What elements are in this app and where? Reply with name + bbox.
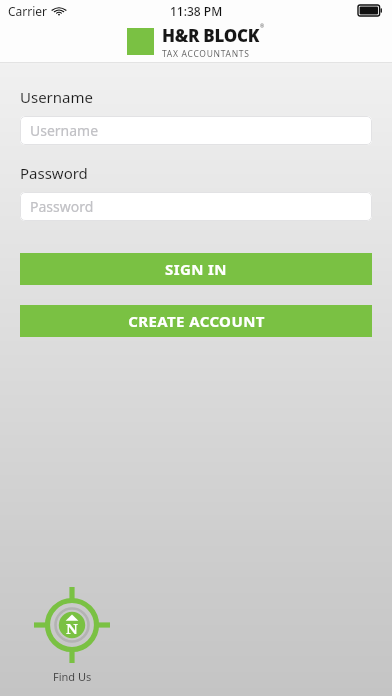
button[interactable]: Password: [20, 192, 372, 221]
button[interactable]: CREATE ACCOUNT: [20, 305, 372, 337]
staticText: Username: [30, 121, 99, 140]
button[interactable]: Username: [20, 116, 372, 145]
staticText: SIGN IN: [165, 259, 227, 279]
staticText: Password: [20, 163, 88, 183]
staticText: N: [66, 618, 78, 638]
staticText: H&R BLOCK: [162, 24, 260, 47]
staticText: 11:38 PM: [170, 3, 223, 19]
staticText: Carrier: [8, 3, 48, 19]
staticText: Username: [20, 87, 93, 107]
staticText: TAX ACCOUNTANTS: [162, 48, 250, 60]
staticText: ®: [260, 23, 265, 30]
staticText: CREATE ACCOUNT: [128, 311, 265, 331]
button[interactable]: Find Us: [26, 581, 118, 688]
button[interactable]: SIGN IN: [20, 253, 372, 285]
staticText: Password: [30, 197, 94, 216]
other: Find Us: [32, 585, 112, 665]
staticText: Find Us: [53, 669, 92, 684]
